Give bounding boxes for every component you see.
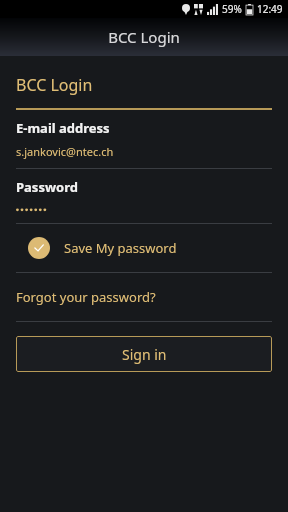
staticText: Save My password (64, 239, 177, 257)
staticText: Forgot your password? (16, 288, 156, 306)
button[interactable]: Password (0, 169, 288, 223)
staticText: Password (16, 178, 78, 196)
staticText: BCC Login (108, 27, 180, 47)
other: Save my password checked (28, 237, 50, 259)
staticText: s.jankovic@ntec.ch (16, 144, 114, 159)
staticText: Sign in (122, 345, 167, 364)
staticText: E-mail address (16, 119, 110, 137)
button[interactable]: E-mail address (0, 110, 288, 168)
button[interactable]: Forgot your password? (0, 273, 288, 321)
button[interactable]: Sign in (16, 336, 272, 372)
staticText: BCC Login (16, 74, 93, 96)
staticText: 59% (222, 2, 242, 16)
button[interactable]: Save my password checked (0, 224, 288, 272)
staticText: 12:49 (257, 2, 283, 16)
